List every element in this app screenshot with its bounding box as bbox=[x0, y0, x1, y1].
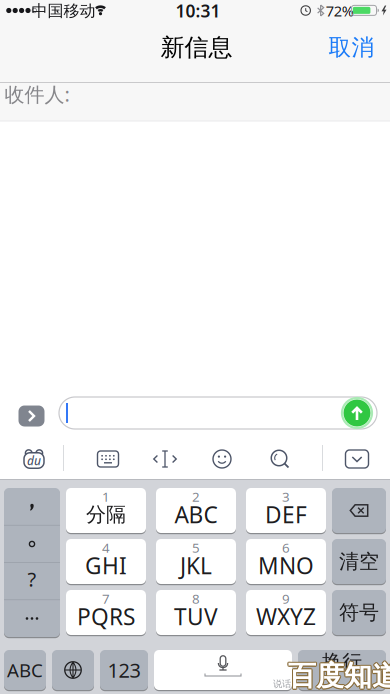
button[interactable]: ? bbox=[4, 487, 60, 638]
button[interactable] bbox=[97, 451, 118, 467]
staticText: 百度知道 bbox=[287, 659, 390, 693]
staticText: 换行 bbox=[322, 650, 362, 674]
button[interactable] bbox=[18, 405, 44, 426]
staticText: 10:31 bbox=[175, 0, 220, 22]
staticText: 9 bbox=[282, 590, 290, 607]
staticText: 6 bbox=[282, 539, 290, 556]
button[interactable]: 取消 bbox=[319, 27, 383, 67]
staticText: 7 bbox=[102, 590, 110, 607]
staticText: ABC bbox=[7, 658, 43, 682]
staticText: 百度知道 bbox=[287, 660, 390, 694]
staticText: ABC bbox=[174, 499, 217, 529]
button[interactable]: ABC bbox=[4, 649, 46, 691]
staticText: 百度知道 bbox=[289, 658, 390, 692]
staticText: 清空 bbox=[339, 549, 379, 574]
staticText: GHI bbox=[85, 550, 127, 580]
staticText: TUV bbox=[174, 601, 218, 631]
button[interactable]: 6 bbox=[246, 538, 326, 585]
button[interactable]: 9 bbox=[246, 589, 326, 636]
staticText: 新信息 bbox=[160, 33, 232, 62]
button[interactable]: 说话 bbox=[154, 649, 292, 691]
staticText: 说话 bbox=[273, 678, 291, 690]
staticText: ? bbox=[27, 566, 36, 592]
staticText: 取消 bbox=[328, 34, 374, 61]
button[interactable]: 2 bbox=[156, 487, 236, 534]
button[interactable]: 换行 bbox=[298, 649, 386, 691]
button[interactable]: du bbox=[23, 449, 44, 468]
staticText: 百度知道 bbox=[288, 660, 390, 694]
staticText: 8 bbox=[192, 590, 200, 607]
button[interactable]: 4 bbox=[66, 538, 146, 585]
staticText: 百度知道 bbox=[289, 660, 390, 694]
staticText: 百度知道 bbox=[288, 659, 390, 693]
staticText: 符号 bbox=[339, 600, 379, 625]
button[interactable] bbox=[153, 450, 177, 468]
button[interactable]: 8 bbox=[156, 589, 236, 636]
staticText: 百度知道 bbox=[287, 658, 390, 692]
staticText: 123 bbox=[107, 657, 140, 683]
button[interactable] bbox=[271, 450, 289, 468]
staticText: 分隔 bbox=[86, 502, 126, 527]
button[interactable]: 5 bbox=[156, 538, 236, 585]
button[interactable]: 7 bbox=[66, 589, 146, 636]
button[interactable] bbox=[332, 487, 386, 534]
button[interactable] bbox=[345, 450, 368, 468]
staticText: du bbox=[27, 453, 41, 469]
button[interactable] bbox=[342, 398, 372, 428]
staticText: 百度知道 bbox=[288, 658, 390, 692]
staticText: 百度知道 bbox=[289, 659, 390, 693]
staticText: 收件人: bbox=[4, 81, 69, 107]
button[interactable]: 1 bbox=[66, 487, 146, 534]
staticText: 5 bbox=[192, 539, 200, 556]
button[interactable]: 清空 bbox=[332, 538, 386, 585]
staticText: 2 bbox=[192, 488, 200, 505]
staticText: PQRS bbox=[77, 601, 135, 631]
staticText: 1 bbox=[102, 488, 110, 505]
button[interactable] bbox=[213, 450, 231, 468]
button[interactable]: 3 bbox=[246, 487, 326, 534]
staticText: 4 bbox=[102, 539, 110, 556]
staticText: MNO bbox=[258, 550, 314, 580]
staticText: 72% bbox=[326, 1, 354, 21]
staticText: WXYZ bbox=[256, 601, 316, 631]
staticText: DEF bbox=[265, 499, 307, 529]
button[interactable]: 符号 bbox=[332, 589, 386, 636]
staticText: 中国移动 bbox=[31, 1, 95, 21]
button[interactable] bbox=[52, 649, 94, 691]
button[interactable]: 123 bbox=[100, 649, 148, 691]
staticText: JKL bbox=[180, 550, 212, 580]
staticText: 3 bbox=[282, 488, 290, 505]
